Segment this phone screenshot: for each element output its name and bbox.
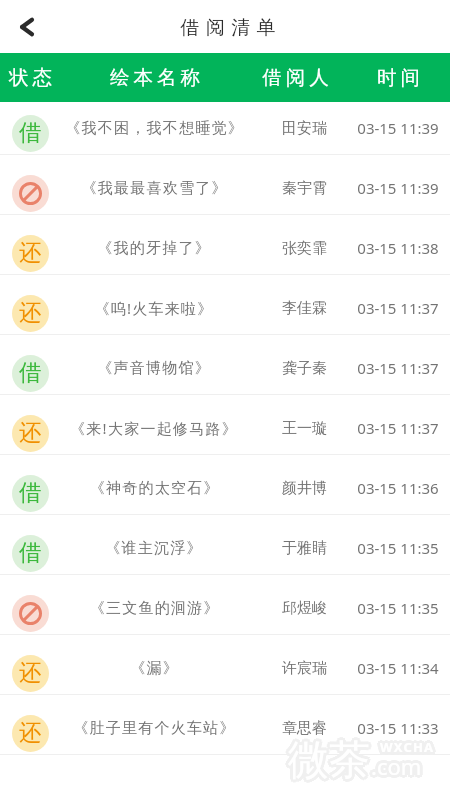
staticText: WXCHA [378, 736, 433, 754]
button[interactable]: 《我最最喜欢雪了》 [0, 155, 450, 214]
button[interactable]: Back [0, 0, 54, 53]
staticText: 《来!大家一起修马路》 [70, 418, 238, 438]
staticText: 微茶 [288, 738, 370, 790]
button[interactable]: 《三文鱼的洄游》 [0, 575, 450, 634]
staticText: 微茶 [290, 737, 372, 789]
staticText: .com [369, 749, 420, 779]
button[interactable]: 还 [0, 395, 450, 454]
button[interactable]: 借 [0, 455, 450, 514]
staticText: 03-15 11:35 [357, 538, 439, 558]
staticText: 绘本名称 [108, 65, 202, 90]
staticText: 微茶 [290, 737, 372, 789]
staticText: WXCHA [378, 738, 433, 756]
staticText: WXCHA [382, 740, 437, 758]
staticText: 03-15 11:39 [357, 178, 439, 198]
staticText: 《我不困，我不想睡觉》 [65, 119, 244, 138]
staticText: 微茶 [290, 733, 372, 785]
staticText: 微茶 [286, 733, 368, 785]
staticText: WXCHA [378, 736, 433, 754]
staticText: 借 [19, 538, 42, 566]
staticText: WXCHA [382, 740, 437, 758]
staticText: 还 [19, 658, 42, 686]
staticText: 邱煜峻 [282, 599, 327, 618]
staticText: 03-15 11:34 [357, 658, 439, 678]
staticText: WXCHA [380, 741, 435, 759]
staticText: 微茶 [286, 735, 368, 787]
staticText: .com [373, 753, 424, 783]
staticText: WXCHA [380, 735, 435, 753]
staticText: 还 [19, 718, 42, 746]
staticText: .com [371, 749, 422, 779]
staticText: 《呜!火车来啦》 [94, 298, 214, 318]
staticText: 03-15 11:37 [357, 298, 439, 318]
staticText: WXCHA [380, 740, 435, 758]
staticText: .com [369, 753, 420, 783]
staticText: .com [369, 753, 420, 783]
button[interactable]: 还 [0, 275, 450, 334]
staticText: 借 [19, 478, 42, 506]
staticText: .com [374, 751, 425, 781]
staticText: .com [369, 751, 420, 781]
button[interactable]: 借 [0, 335, 450, 394]
staticText: WXCHA [378, 740, 433, 758]
staticText: 03-15 11:35 [357, 598, 439, 618]
staticText: 借 [19, 118, 42, 146]
staticText: 03-15 11:37 [357, 418, 439, 438]
staticText: 王一璇 [282, 419, 327, 438]
button[interactable]: 借 [0, 102, 450, 154]
staticText: 许宸瑞 [282, 659, 327, 678]
staticText: .com [371, 748, 422, 778]
staticText: 03-15 11:38 [357, 238, 439, 258]
staticText: WXCHA [380, 736, 435, 754]
staticText: 微茶 [290, 735, 372, 787]
staticText: WXCHA [382, 738, 437, 756]
button[interactable]: 还 [0, 215, 450, 274]
staticText: 秦宇霄 [282, 179, 327, 198]
button[interactable]: 还 [0, 695, 450, 754]
staticText: 借阅人 [262, 65, 333, 90]
staticText: 《谁主沉浮》 [105, 539, 203, 558]
staticText: WXCHA [382, 736, 437, 754]
staticText: 微茶 [286, 733, 368, 785]
staticText: 微茶 [285, 735, 367, 787]
staticText: 《漏》 [130, 659, 179, 678]
button[interactable]: 借 [0, 515, 450, 574]
staticText: 微茶 [290, 733, 372, 785]
staticText: .com [371, 753, 422, 783]
staticText: 03-15 11:39 [357, 118, 439, 138]
button[interactable]: 还 [0, 635, 450, 694]
staticText: 张奕霏 [282, 239, 327, 258]
staticText: 《声音博物馆》 [97, 359, 211, 378]
staticText: 03-15 11:36 [357, 478, 439, 498]
staticText: 微茶 [288, 733, 370, 785]
staticText: .com [368, 751, 419, 781]
staticText: 借阅清单 [177, 16, 279, 40]
staticText: 章思睿 [282, 719, 327, 738]
staticText: 颜井博 [282, 479, 327, 498]
staticText: .com [369, 749, 420, 779]
staticText: 03-15 11:33 [357, 718, 439, 738]
staticText: 《三文鱼的洄游》 [89, 599, 219, 618]
staticText: 龚子秦 [282, 359, 327, 378]
staticText: 《我的牙掉了》 [97, 239, 211, 258]
staticText: 微茶 [288, 735, 370, 787]
staticText: 借 [19, 358, 42, 386]
staticText: .com [371, 751, 422, 781]
staticText: 《肚子里有个火车站》 [73, 719, 236, 738]
staticText: WXCHA [377, 738, 432, 756]
staticText: 时间 [375, 65, 422, 90]
staticText: 微茶 [286, 737, 368, 789]
staticText: 微茶 [286, 737, 368, 789]
staticText: 还 [19, 298, 42, 326]
staticText: WXCHA [383, 738, 438, 756]
staticText: .com [373, 749, 424, 779]
staticText: .com [373, 753, 424, 783]
staticText: 李佳霖 [282, 299, 327, 318]
staticText: 状态 [7, 65, 54, 90]
staticText: 微茶 [291, 735, 373, 787]
staticText: 《神奇的太空石》 [89, 479, 219, 498]
staticText: .com [373, 751, 424, 781]
staticText: .com [371, 754, 422, 784]
staticText: 微茶 [288, 732, 370, 784]
staticText: 《我最最喜欢雪了》 [81, 179, 228, 198]
